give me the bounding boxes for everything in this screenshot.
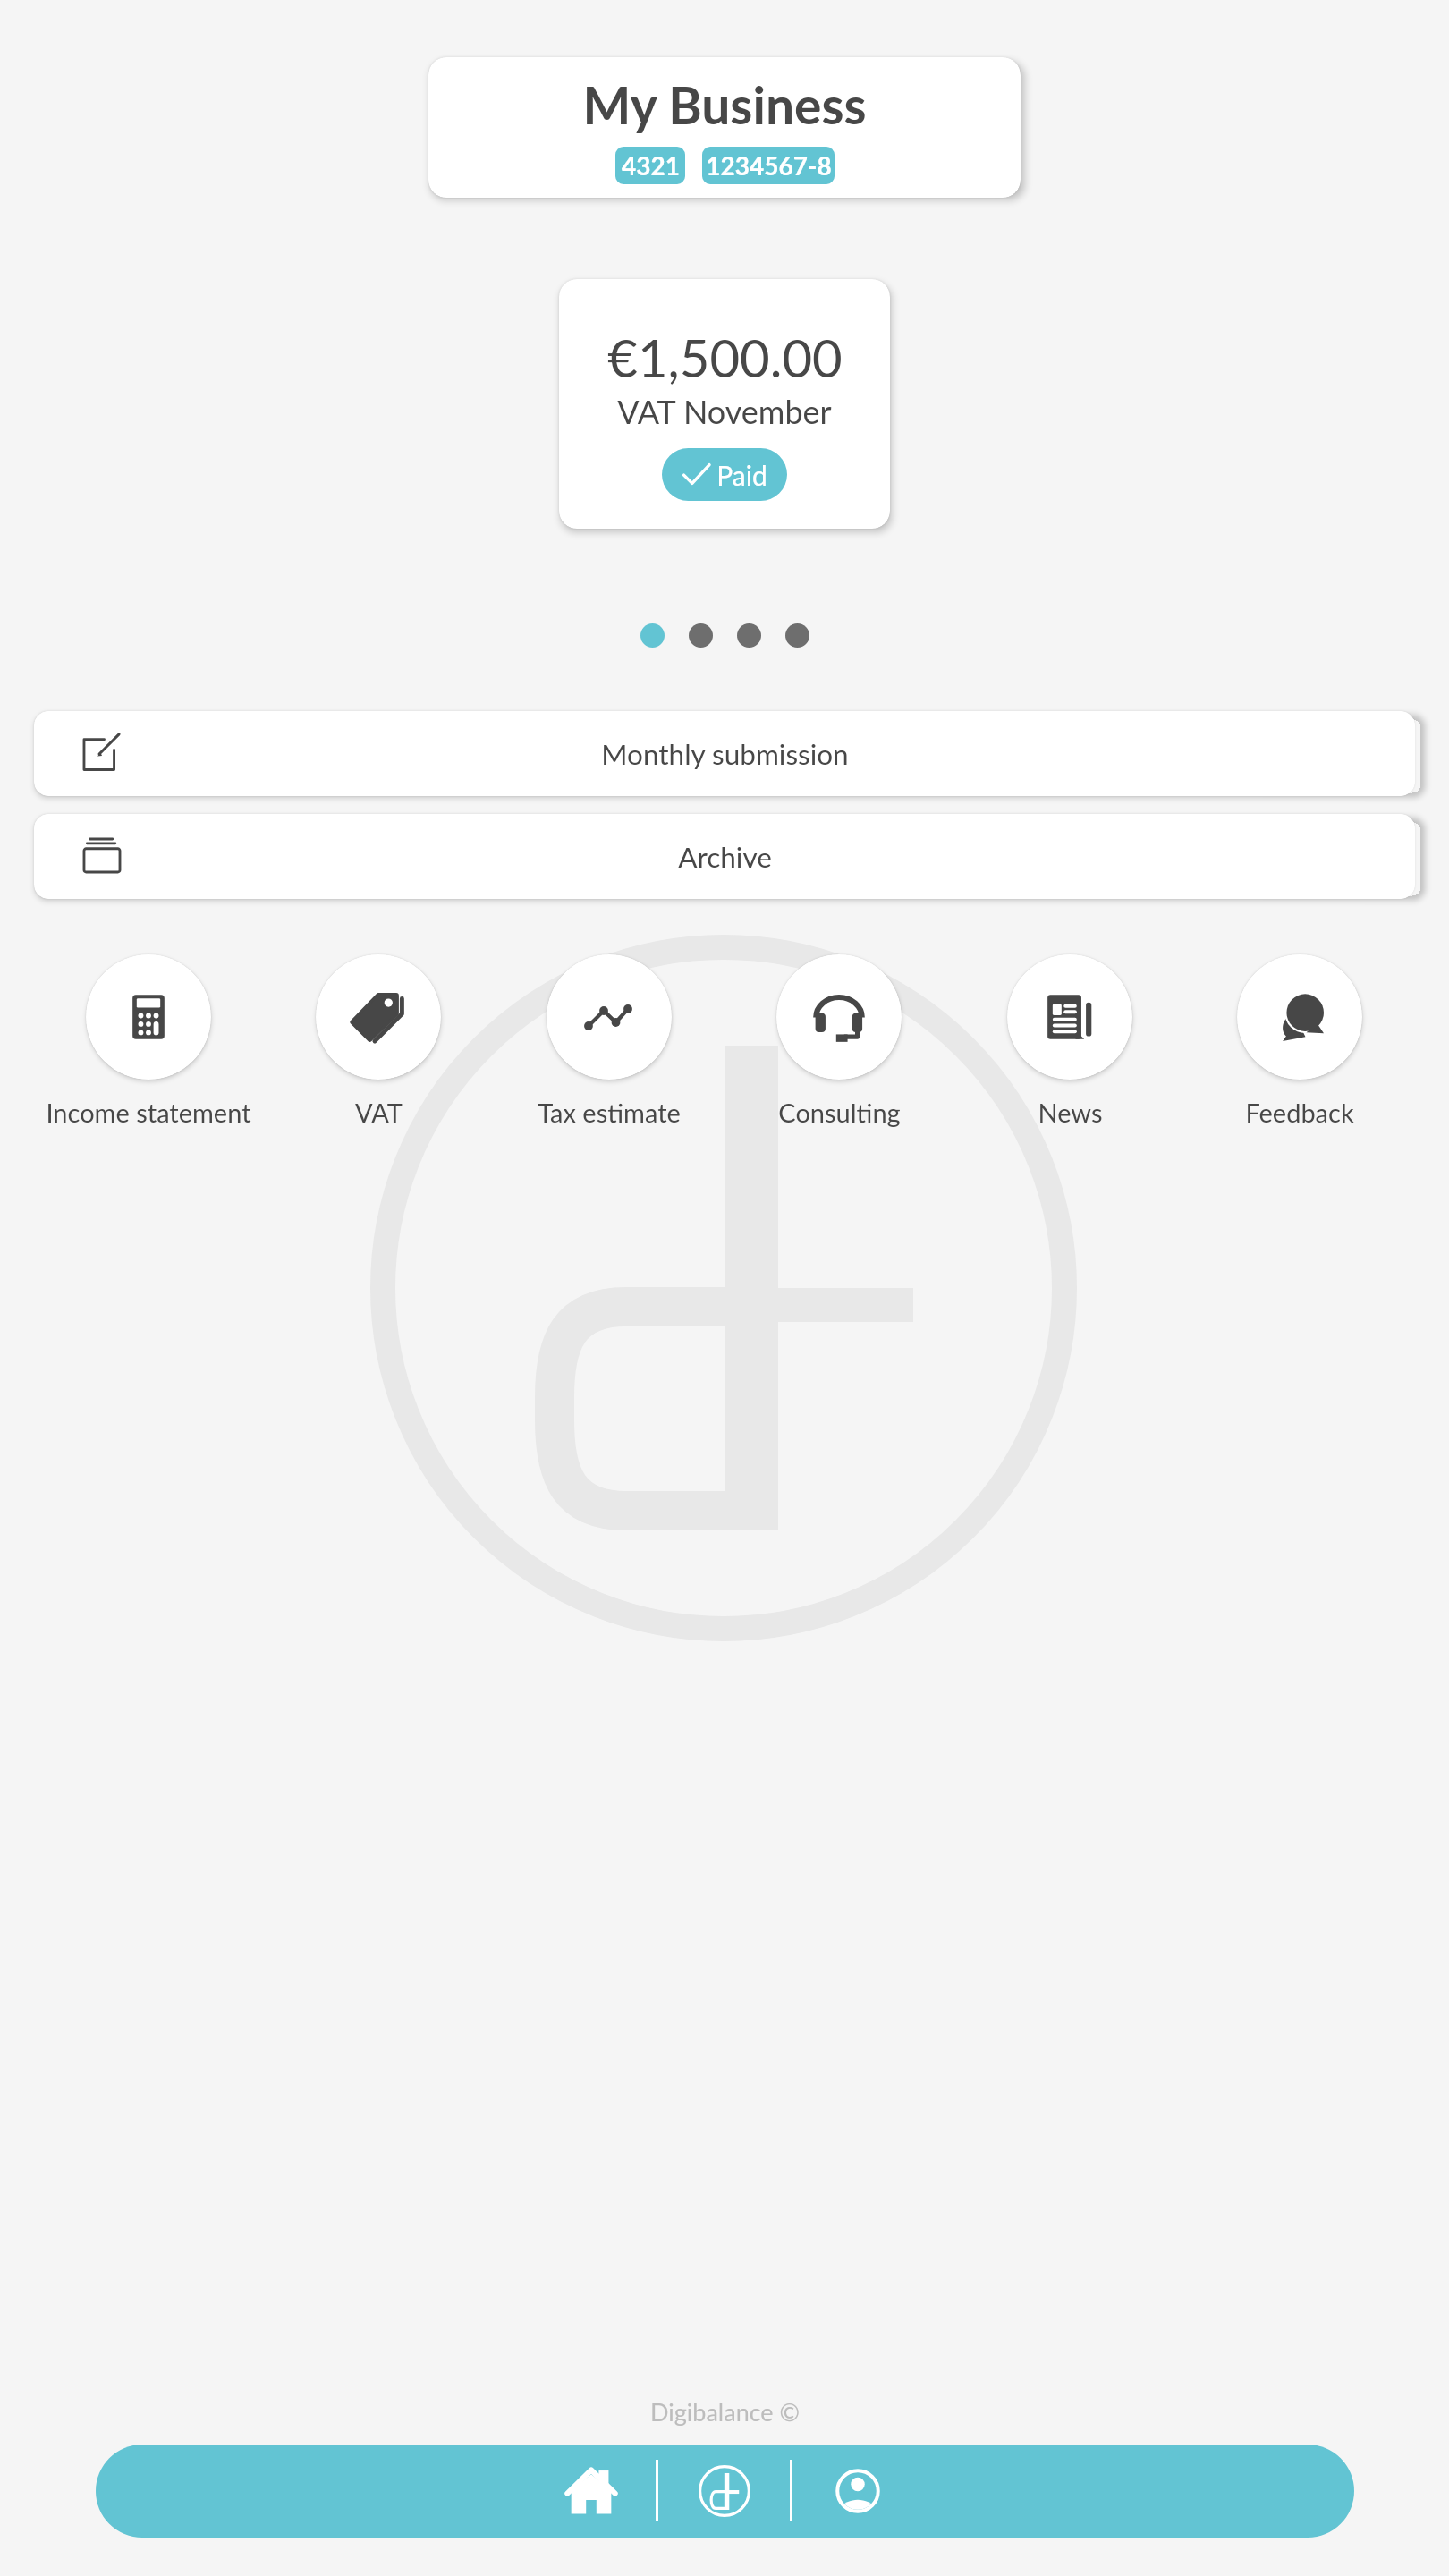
button[interactable]: My Business	[428, 57, 1021, 198]
button[interactable]: Page 3	[737, 623, 761, 648]
button[interactable]: VAT	[262, 954, 495, 1128]
staticText: Digibalance ©	[650, 2397, 800, 2426]
staticText: €1,500.00	[607, 326, 843, 389]
staticText: VAT	[355, 1097, 402, 1128]
button[interactable]: Digibalance	[680, 2445, 769, 2538]
staticText: My Business	[582, 74, 867, 135]
button[interactable]: Feedback	[1183, 954, 1416, 1128]
staticText: News	[1038, 1097, 1103, 1128]
button[interactable]: News	[953, 954, 1186, 1128]
staticText: VAT November	[617, 392, 832, 430]
button[interactable]: Page 4	[785, 623, 809, 648]
button[interactable]: Income statement	[32, 954, 265, 1128]
button[interactable]: Profile	[813, 2445, 902, 2538]
staticText: Paid	[716, 459, 767, 491]
staticText: Consulting	[778, 1097, 901, 1128]
staticText: 1234567-8	[706, 150, 832, 181]
staticText: Tax estimate	[538, 1097, 681, 1128]
button[interactable]: Tax estimate	[493, 954, 725, 1128]
button[interactable]: Page 2	[689, 623, 713, 648]
staticText: 4321	[622, 150, 680, 181]
staticText: Income statement	[46, 1097, 251, 1128]
staticText: Monthly submission	[601, 737, 849, 771]
button[interactable]: €1,500.00	[559, 279, 890, 529]
button[interactable]: Monthly submission	[34, 711, 1415, 796]
button[interactable]: Home	[547, 2445, 636, 2538]
button[interactable]: Page 1	[640, 623, 665, 648]
button[interactable]: Archive	[34, 814, 1415, 899]
button[interactable]: Consulting	[723, 954, 955, 1128]
staticText: Archive	[678, 840, 772, 874]
button[interactable]: Paid	[662, 448, 787, 501]
staticText: Feedback	[1245, 1097, 1354, 1128]
